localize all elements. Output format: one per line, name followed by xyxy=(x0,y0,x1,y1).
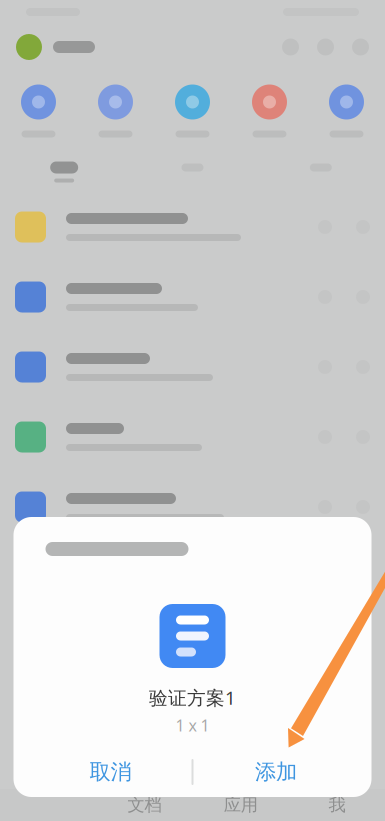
button[interactable]: File xyxy=(0,472,385,542)
button[interactable]: File xyxy=(0,262,385,332)
button[interactable]: File xyxy=(0,192,385,262)
button[interactable]: More xyxy=(352,38,369,55)
button[interactable]: Quick action xyxy=(231,84,308,137)
button[interactable]: Tab xyxy=(257,163,385,180)
staticText: 验证方案1 xyxy=(149,685,236,710)
staticText: 文档 xyxy=(127,794,161,816)
button[interactable]: Tab xyxy=(128,163,257,180)
staticText: 应用 xyxy=(224,794,258,816)
button[interactable]: File xyxy=(0,402,385,472)
button[interactable]: Quick action xyxy=(77,84,154,137)
button[interactable]: 我 xyxy=(289,789,385,821)
button[interactable]: Tab xyxy=(0,161,128,182)
button[interactable]: Quick action xyxy=(154,84,231,137)
button[interactable]: 取消 xyxy=(29,747,191,797)
staticText: 我 xyxy=(328,794,345,816)
button[interactable]: Quick action xyxy=(0,84,77,137)
button[interactable]: Quick action xyxy=(308,84,385,137)
button[interactable]: Home xyxy=(0,789,96,821)
staticText: 添加 xyxy=(255,759,297,785)
button[interactable]: 应用 xyxy=(192,789,289,821)
staticText: 1 x 1 xyxy=(175,715,209,736)
button[interactable]: 文档 xyxy=(96,789,192,821)
button[interactable]: Search xyxy=(282,38,299,55)
staticText: 取消 xyxy=(89,759,131,785)
button[interactable]: File xyxy=(0,332,385,402)
button[interactable]: 添加 xyxy=(193,747,358,797)
button[interactable]: Scan xyxy=(317,38,334,55)
